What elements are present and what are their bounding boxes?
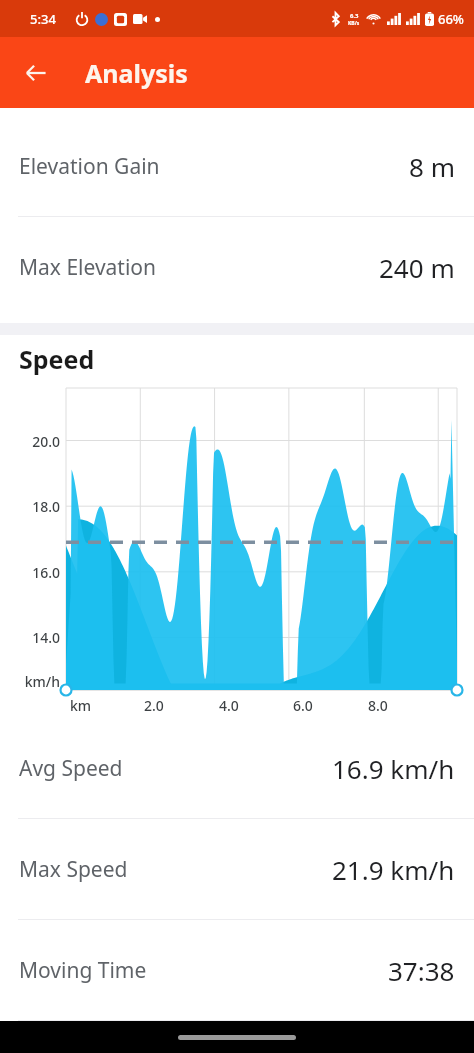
staticText: Elevation Gain — [19, 152, 160, 181]
button[interactable]: Avg Speed — [0, 718, 474, 818]
button[interactable]: Max Speed — [0, 819, 474, 919]
staticText: 6.3 — [350, 12, 359, 20]
staticText: 5:34 — [30, 10, 56, 28]
staticText: 6.0 — [293, 696, 313, 715]
staticText: Speed — [19, 342, 95, 376]
staticText: 2.0 — [144, 696, 164, 715]
staticText: Analysis — [85, 56, 188, 90]
staticText: 20.0 — [14, 432, 60, 451]
staticText: km — [70, 696, 92, 715]
button[interactable]: Back — [14, 51, 58, 95]
staticText: KB/s — [348, 20, 360, 27]
staticText: 8 m — [409, 149, 455, 184]
staticText: Avg Speed — [19, 754, 123, 783]
staticText: 14.0 — [14, 628, 60, 647]
button[interactable]: Max Elevation — [0, 217, 474, 317]
staticText: Max Speed — [19, 855, 128, 884]
staticText: 37:38 — [388, 953, 455, 988]
staticText: 16.9 km/h — [332, 751, 455, 786]
staticText: Max Elevation — [19, 253, 157, 282]
staticText: 21.9 km/h — [332, 852, 455, 887]
button[interactable]: Elevation Gain — [0, 116, 474, 216]
staticText: 16.0 — [14, 563, 60, 582]
staticText: 18.0 — [14, 497, 60, 516]
staticText: 4.0 — [219, 696, 239, 715]
staticText: 66% — [438, 10, 464, 28]
staticText: 8.0 — [368, 696, 388, 715]
button[interactable]: Moving Time — [0, 920, 474, 1020]
staticText: Moving Time — [19, 956, 147, 985]
staticText: 240 m — [379, 250, 455, 285]
staticText: km/h — [14, 672, 60, 691]
